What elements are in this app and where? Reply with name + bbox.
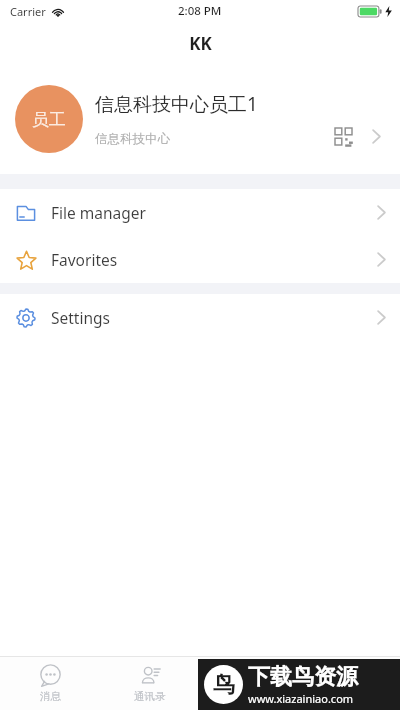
staticText: 信息科技中心 [95,131,170,147]
button[interactable]: 消息 [0,657,100,710]
button[interactable]: Settings [0,294,400,341]
staticText: Carrier [10,4,46,19]
staticText: 消息 [40,690,61,703]
staticText: KK [189,32,212,55]
button[interactable]: QR code [328,121,358,151]
staticText: 下载鸟资源 [248,663,358,691]
staticText: Favorites [51,249,118,270]
staticText: 鸟 [213,671,235,699]
staticText: 2:08 PM [178,3,222,19]
button[interactable]: 通讯录 [100,657,200,710]
staticText: 通讯录 [134,690,166,703]
button[interactable]: Favorites [0,236,400,283]
staticText: www.xiazainiao.com [248,691,354,706]
button[interactable]: File manager [0,189,400,236]
staticText: 信息科技中心员工1 [95,91,258,117]
button[interactable]: 员工 [0,64,400,174]
staticText: 员工 [32,109,66,130]
staticText: Settings [51,307,110,328]
staticText: File manager [51,202,146,223]
